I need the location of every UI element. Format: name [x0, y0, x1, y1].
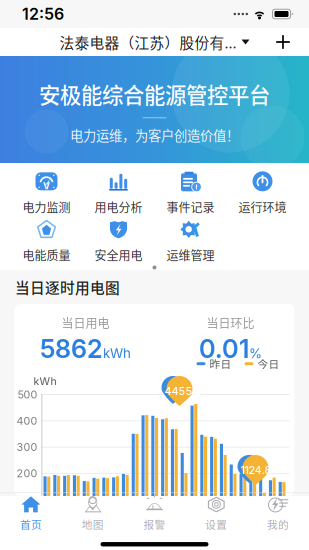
staticText: 5862 [40, 333, 103, 364]
staticText: 今日 [257, 356, 279, 371]
staticText: % [249, 345, 262, 361]
button[interactable]: 我的 [247, 493, 309, 534]
staticText: 运维管理 [166, 246, 214, 264]
button[interactable]: 用电分析 [82, 169, 154, 217]
button[interactable]: 事件记录 [154, 169, 226, 217]
staticText: 昨日 [209, 356, 231, 371]
staticText: 用电分析 [94, 198, 142, 216]
staticText: 事件记录 [166, 198, 214, 216]
staticText: V [43, 180, 50, 192]
staticText: 设置 [205, 516, 227, 532]
staticText: 地图 [82, 516, 104, 532]
button[interactable]: V [10, 169, 82, 217]
staticText: 首页 [20, 516, 42, 532]
staticText: 报警 [143, 516, 165, 532]
staticText: 法泰电器（江苏）股份有... [59, 31, 236, 53]
button[interactable]: Add [267, 28, 299, 56]
button[interactable]: 安全用电 [82, 217, 154, 265]
staticText: 400 [16, 414, 37, 427]
staticText: 300 [16, 441, 37, 453]
button[interactable]: 电能质量 [10, 217, 82, 265]
staticText: 电能质量 [22, 246, 70, 264]
staticText: 200 [16, 467, 37, 480]
staticText: 电力运维，为客户创造价值！ [70, 125, 239, 145]
staticText: 安极能综合能源管控平台 [39, 78, 270, 109]
staticText: kWh [33, 375, 56, 388]
button[interactable]: 设置 [185, 493, 247, 534]
button[interactable]: 报警 [124, 493, 185, 534]
staticText: kWh [103, 345, 131, 361]
button[interactable]: 法泰电器（江苏）股份有... [59, 26, 249, 58]
button[interactable]: 地图 [62, 493, 124, 534]
button[interactable]: 运行环境 [226, 169, 298, 217]
button[interactable]: 运维管理 [154, 217, 226, 265]
staticText: 当日逐时用电图 [15, 276, 120, 298]
staticText: 4455.2 [164, 384, 201, 397]
staticText: 500 [17, 388, 37, 401]
staticText: 电力监测 [22, 198, 70, 216]
staticText: 安全用电 [94, 246, 142, 264]
staticText: 0.01 [199, 333, 249, 364]
staticText: 我的 [267, 516, 289, 532]
staticText: 100 [19, 493, 37, 506]
button[interactable]: 首页 [0, 493, 62, 534]
staticText: 1124.8 [240, 463, 271, 476]
staticText: 12:56 [22, 4, 64, 24]
staticText: 运行环境 [238, 198, 286, 216]
staticText: 当日用电 [61, 314, 109, 331]
staticText: 当日环比 [206, 314, 254, 331]
